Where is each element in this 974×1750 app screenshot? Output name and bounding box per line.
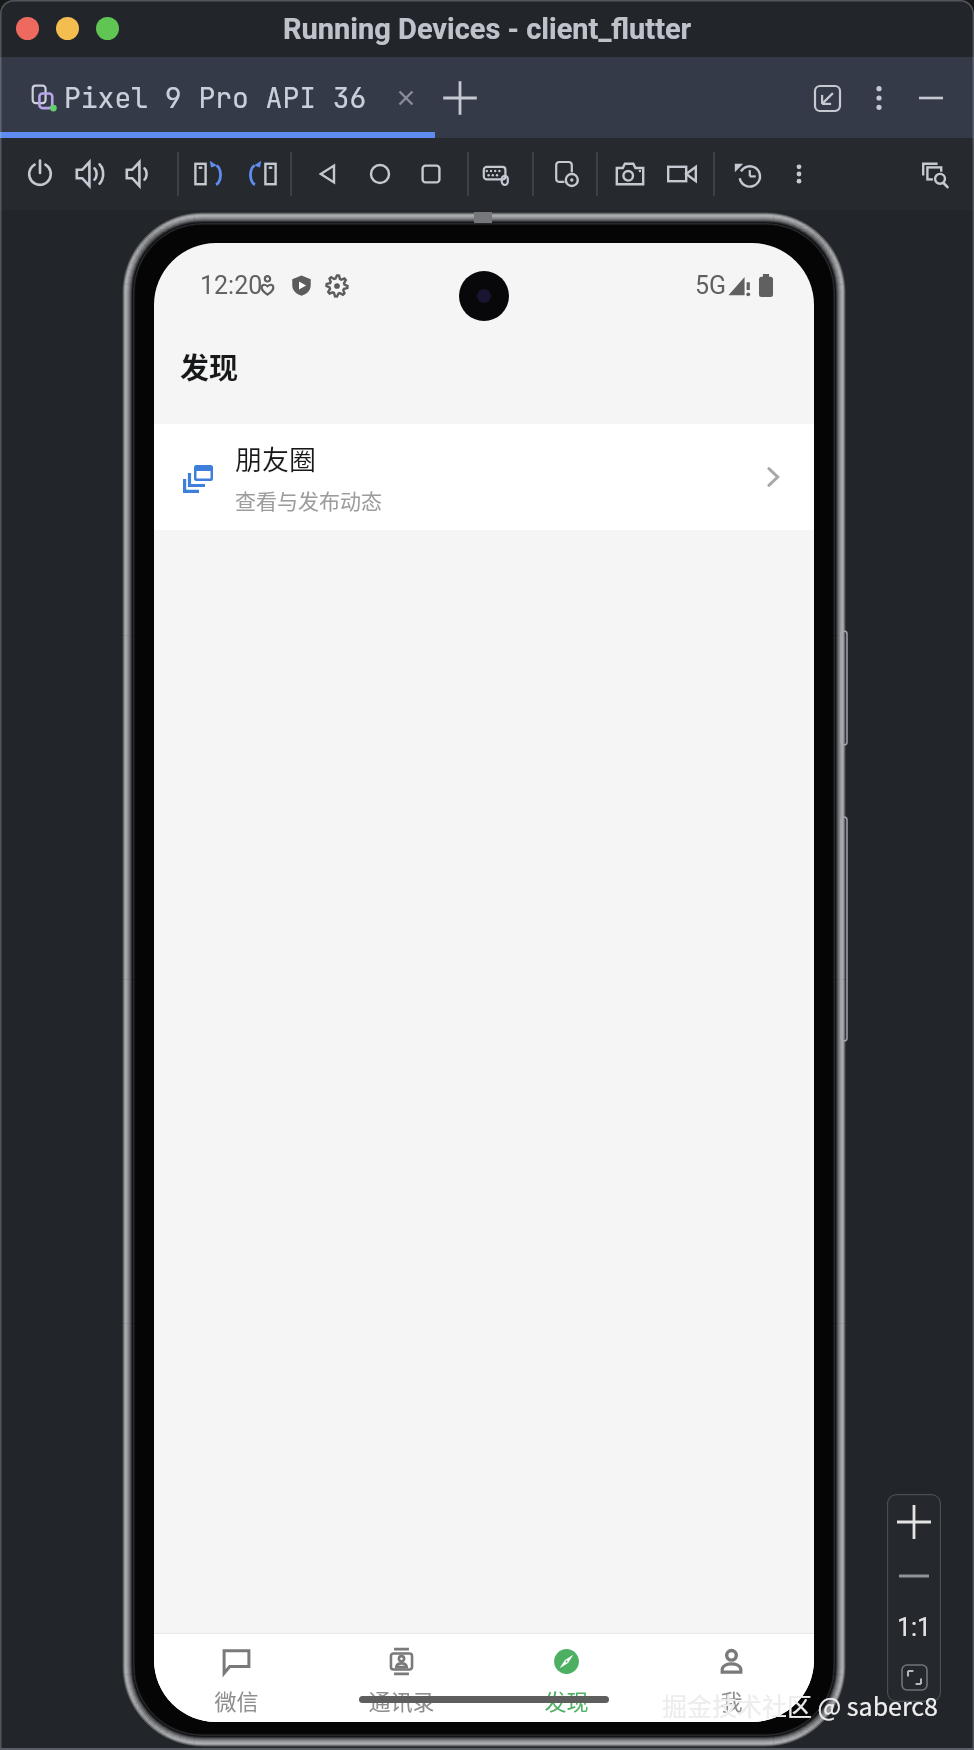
staticText: 1:1 [897,1613,932,1642]
button[interactable]: Home [359,146,401,202]
button[interactable]: Device settings [546,146,588,202]
button[interactable]: More options [859,78,899,118]
button[interactable]: Hide window [911,78,951,118]
staticText: 5G [695,271,727,300]
button[interactable]: Close window [16,17,39,40]
button[interactable]: Back [307,146,349,202]
button[interactable]: Keyboard [476,146,518,202]
staticText: 发现 [180,345,239,387]
staticText: 12:20 [200,271,263,300]
button[interactable]: Close tab [388,80,424,116]
button[interactable]: Rotate right [242,146,284,202]
staticText: 发现 [544,1684,589,1716]
button[interactable]: 朋友圈 [154,424,814,530]
button[interactable]: 微信 [154,1634,319,1716]
button[interactable]: Screenshot [609,146,651,202]
button[interactable]: Maximize window [96,17,119,40]
button[interactable]: Rotate left [187,146,229,202]
button[interactable]: Fit to screen [887,1652,941,1702]
button[interactable]: New tab [440,78,480,118]
button[interactable]: Dock window [807,78,847,118]
button[interactable]: Minimize window [56,17,79,40]
button[interactable]: 我 [649,1634,814,1716]
button[interactable]: Volume up [69,146,111,202]
staticText: 通讯录 [368,1684,435,1716]
button[interactable]: Zoom out [887,1550,941,1602]
staticText: Pixel 9 Pro API 36 [64,79,367,116]
button[interactable]: 发现 [484,1634,649,1716]
staticText: 掘金技术社区 @ saberc8 [662,1687,938,1723]
button[interactable]: Record video [661,146,703,202]
button[interactable]: Inspect layout [913,146,955,202]
staticText: 朋友圈 [235,439,316,478]
button[interactable]: Power [19,146,61,202]
button[interactable]: Volume down [119,146,161,202]
button[interactable]: Actual size [887,1602,941,1652]
staticText: Running Devices - client_flutter [283,12,692,46]
button[interactable]: Overview [410,146,452,202]
button[interactable]: More [778,146,820,202]
button[interactable]: Zoom in [887,1494,941,1550]
button[interactable]: History [727,146,769,202]
staticText: 微信 [214,1684,259,1716]
staticText: 我 [720,1684,743,1716]
staticText: 查看与发布动态 [235,485,382,515]
button[interactable]: 通讯录 [319,1634,484,1716]
